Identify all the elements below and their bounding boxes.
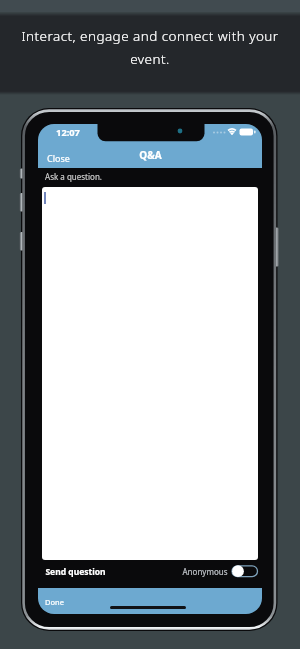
staticText: Interact, engage and connect with your bbox=[21, 27, 279, 45]
staticText: Ask a question. bbox=[45, 171, 102, 182]
staticText: 12:07 bbox=[56, 126, 80, 139]
button[interactable] bbox=[42, 187, 258, 560]
button[interactable]: Send question bbox=[42, 563, 109, 581]
staticText: Anonymous bbox=[182, 566, 228, 577]
button[interactable]: Close bbox=[44, 149, 73, 167]
staticText: Done bbox=[45, 597, 64, 607]
staticText: Q&A bbox=[139, 148, 162, 162]
button[interactable]: Anonymous bbox=[182, 565, 258, 577]
button[interactable]: Done bbox=[42, 594, 67, 610]
staticText: Send question bbox=[45, 566, 106, 578]
staticText: Close bbox=[47, 152, 70, 164]
staticText: event. bbox=[130, 50, 170, 68]
